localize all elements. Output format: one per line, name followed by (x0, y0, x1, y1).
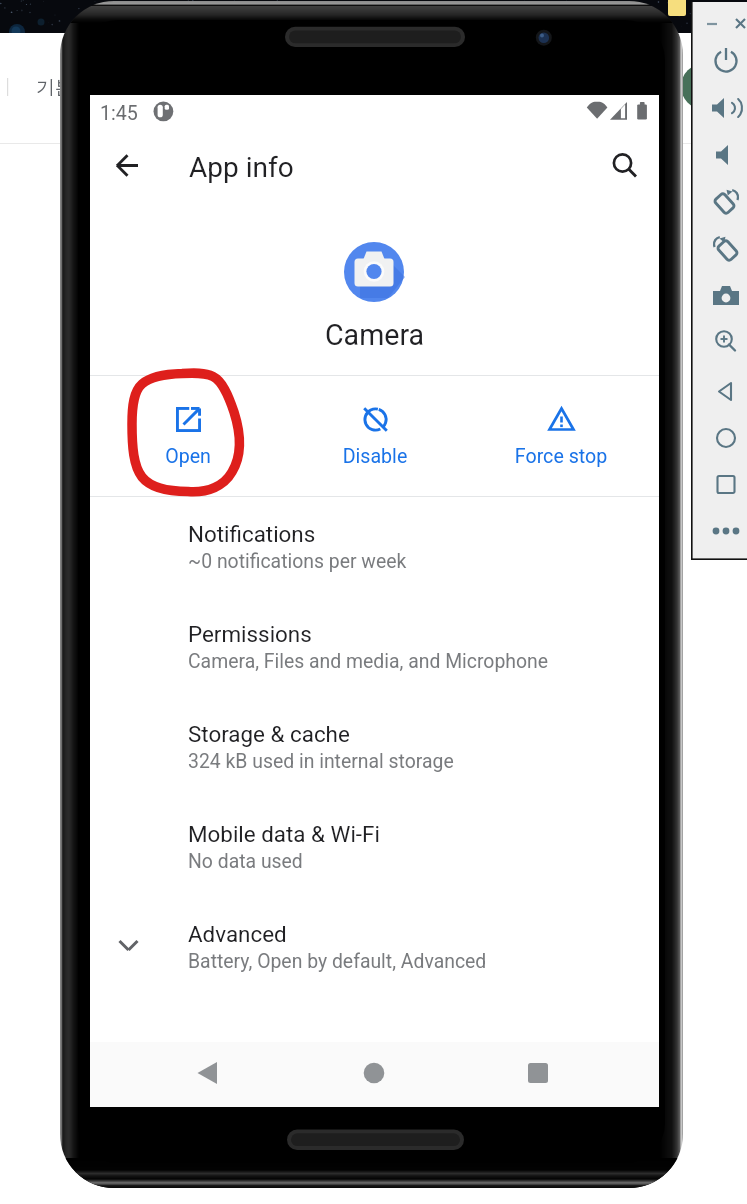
staticText: Force stop (468, 445, 654, 468)
staticText: Storage & cache (188, 721, 350, 747)
staticText: Disable (282, 445, 468, 468)
button[interactable]: Back (104, 142, 152, 190)
staticText: Camera, Files and media, and Microphone (188, 650, 549, 673)
staticText: Permissions (188, 621, 312, 647)
button[interactable]: Storage & cache (90, 713, 659, 813)
staticText: ~0 notifications per week (188, 550, 407, 573)
staticText: Notifications (188, 521, 316, 547)
button[interactable]: Back (176, 1041, 240, 1105)
staticText: Advanced (188, 921, 287, 947)
staticText: Mobile data & Wi-Fi (188, 821, 380, 847)
button[interactable]: Disable (282, 376, 468, 496)
button[interactable]: Search (601, 142, 649, 190)
button[interactable]: Open (95, 376, 281, 496)
staticText: No data used (188, 850, 303, 873)
staticText: App info (189, 151, 294, 184)
staticText: 기본 (36, 76, 74, 100)
staticText: Open (95, 445, 281, 468)
button[interactable]: Home (342, 1041, 406, 1105)
staticText: 324 kB used in internal storage (188, 750, 454, 773)
button[interactable]: Advanced (90, 913, 659, 1013)
button[interactable]: Recents (506, 1041, 570, 1105)
staticText: Battery, Open by default, Advanced (188, 950, 487, 973)
staticText: 1:45 (100, 102, 138, 125)
button[interactable]: Force stop (468, 376, 654, 496)
button[interactable]: Permissions (90, 613, 659, 713)
staticText: Camera (325, 318, 425, 352)
button[interactable]: Notifications (90, 513, 659, 613)
button[interactable]: Mobile data & Wi-Fi (90, 813, 659, 913)
